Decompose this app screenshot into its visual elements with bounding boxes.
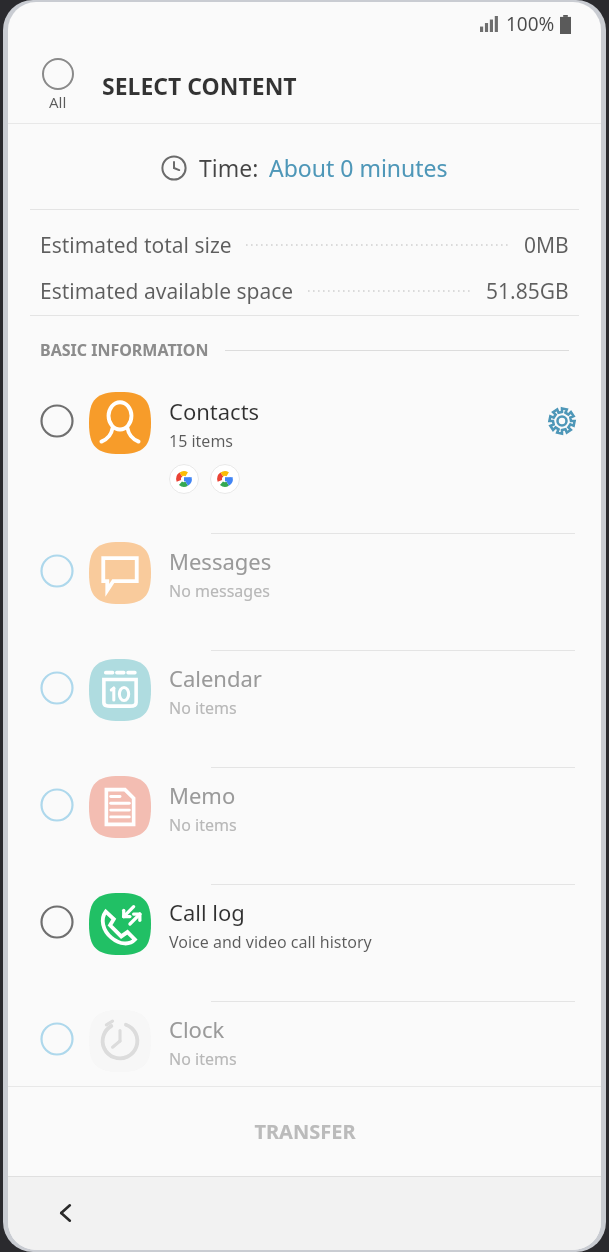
staticText: No messages (169, 580, 270, 602)
staticText: No items (169, 814, 237, 836)
staticText: BASIC INFORMATION (40, 339, 209, 361)
staticText: 51.85GB (486, 277, 569, 306)
staticText: No items (169, 697, 237, 719)
button[interactable]: Contacts settings (541, 400, 583, 442)
staticText: Estimated total size (40, 231, 232, 260)
button[interactable]: Memo (8, 768, 601, 885)
staticText: Call log (169, 897, 245, 927)
button[interactable]: Back (44, 1191, 88, 1235)
staticText: 100% (506, 11, 555, 37)
staticText: Messages (169, 546, 272, 576)
staticText: 15 items (169, 430, 234, 452)
button[interactable]: Call log (8, 885, 601, 1002)
staticText: TRANSFER (254, 1118, 356, 1145)
staticText: 0MB (524, 231, 569, 260)
button[interactable]: Calendar (8, 651, 601, 768)
button[interactable]: TRANSFER (8, 1086, 601, 1176)
button[interactable]: All (38, 54, 78, 116)
staticText: All (49, 92, 67, 112)
staticText: Clock (169, 1014, 225, 1044)
staticText: Contacts (169, 396, 260, 426)
staticText: About 0 minutes (269, 152, 448, 183)
staticText: SELECT CONTENT (102, 70, 297, 101)
staticText: Memo (169, 780, 236, 810)
staticText: Estimated available space (40, 277, 294, 306)
staticText: Time: (199, 152, 259, 183)
button[interactable]: Clock (8, 1002, 601, 1119)
staticText: Calendar (169, 663, 262, 693)
staticText: Voice and video call history (169, 931, 372, 953)
button[interactable]: Contacts (8, 384, 601, 534)
button[interactable]: Messages (8, 534, 601, 651)
staticText: No items (169, 1048, 237, 1070)
